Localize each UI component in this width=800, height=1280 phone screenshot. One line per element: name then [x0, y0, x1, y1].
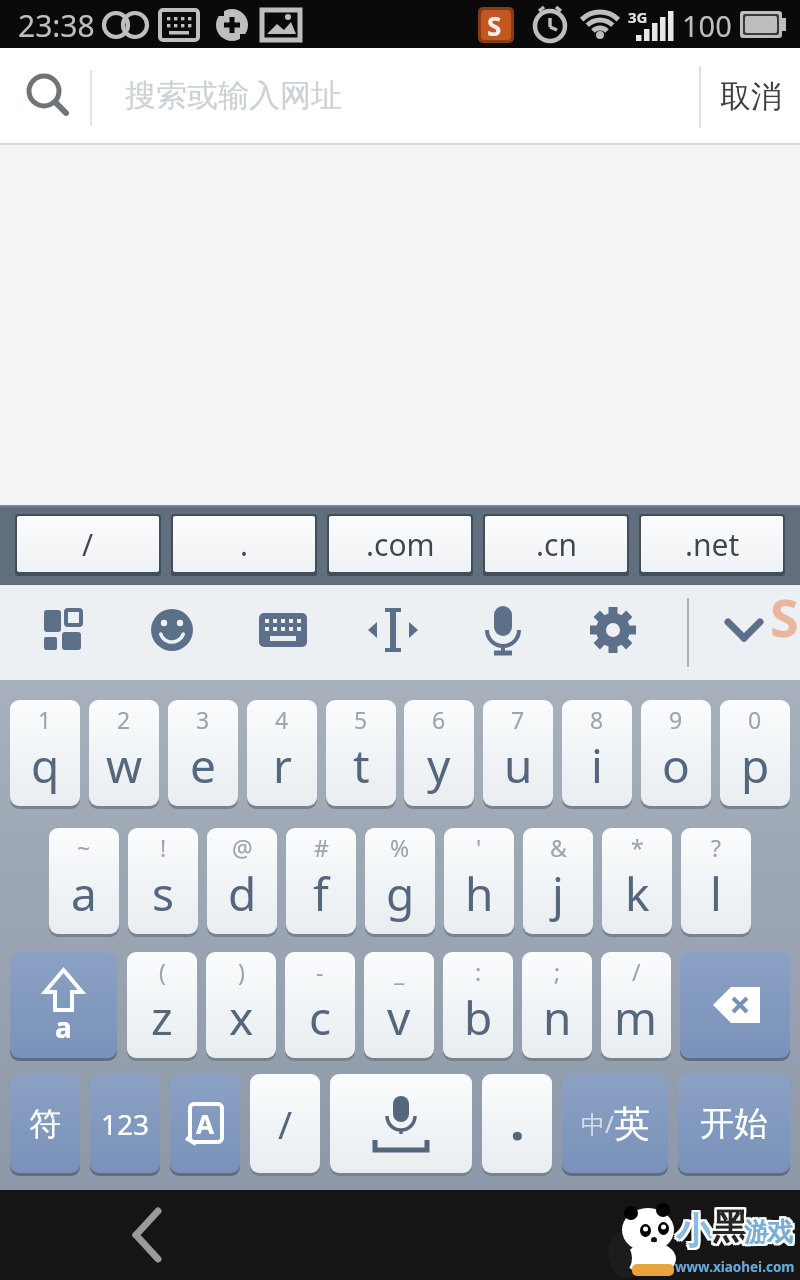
- staticText: .com: [366, 524, 435, 565]
- button[interactable]: :: [443, 952, 513, 1058]
- button[interactable]: /: [250, 1074, 320, 1173]
- staticText: n: [543, 986, 572, 1049]
- staticText: ': [476, 832, 482, 863]
- staticText: 小: [674, 1210, 710, 1255]
- staticText: b: [464, 986, 493, 1049]
- staticText: 小: [678, 1206, 714, 1251]
- button[interactable]: 开始: [678, 1074, 790, 1173]
- staticText: a: [71, 862, 97, 925]
- button[interactable]: .com: [329, 516, 471, 572]
- staticText: f: [313, 862, 329, 925]
- staticText: 游: [746, 1214, 772, 1247]
- staticText: 小: [676, 1208, 712, 1253]
- button[interactable]: [680, 952, 790, 1058]
- staticText: g: [386, 862, 415, 925]
- staticText: 黑: [714, 1206, 750, 1251]
- button[interactable]: ~: [49, 828, 119, 934]
- button[interactable]: A: [170, 1074, 240, 1173]
- button[interactable]: a: [10, 952, 117, 1058]
- staticText: q: [31, 734, 60, 797]
- button[interactable]: 8: [562, 700, 632, 806]
- button[interactable]: 123: [90, 1074, 160, 1173]
- staticText: 符: [29, 1104, 61, 1144]
- button[interactable]: /: [17, 516, 159, 572]
- button[interactable]: [230, 585, 344, 680]
- staticText: h: [465, 862, 494, 925]
- button[interactable]: [572, 585, 686, 680]
- button[interactable]: 5: [326, 700, 396, 806]
- staticText: 游: [746, 1218, 772, 1251]
- button[interactable]: .: [482, 1074, 552, 1173]
- staticText: &: [550, 832, 567, 863]
- button[interactable]: 中/: [562, 1074, 668, 1173]
- button[interactable]: 取消: [701, 48, 800, 145]
- staticText: v: [387, 986, 411, 1049]
- button[interactable]: !: [128, 828, 198, 934]
- staticText: 0: [748, 704, 762, 735]
- button[interactable]: 6: [404, 700, 474, 806]
- staticText: 黑: [714, 1202, 750, 1247]
- button[interactable]: .: [173, 516, 315, 572]
- staticText: 英: [614, 1101, 650, 1146]
- staticText: 游: [744, 1214, 770, 1247]
- button[interactable]: 符: [10, 1074, 80, 1173]
- button[interactable]: 3: [168, 700, 238, 806]
- button[interactable]: &: [523, 828, 593, 934]
- button[interactable]: #: [286, 828, 356, 934]
- staticText: a: [55, 1008, 72, 1046]
- staticText: A: [196, 1106, 214, 1141]
- staticText: /: [632, 956, 641, 987]
- staticText: #: [314, 832, 329, 863]
- button[interactable]: 0: [720, 700, 790, 806]
- button[interactable]: (: [127, 952, 197, 1058]
- button[interactable]: 9: [641, 700, 711, 806]
- staticText: 取消: [720, 77, 782, 116]
- button[interactable]: ;: [522, 952, 592, 1058]
- staticText: s: [152, 862, 175, 925]
- button[interactable]: ?: [681, 828, 751, 934]
- staticText: .: [510, 1084, 525, 1155]
- staticText: 游: [746, 1216, 772, 1249]
- button[interactable]: [0, 585, 115, 680]
- button[interactable]: [115, 585, 230, 680]
- button[interactable]: *: [602, 828, 672, 934]
- button[interactable]: -: [285, 952, 355, 1058]
- staticText: 搜索或输入网址: [125, 76, 342, 115]
- staticText: 3: [196, 704, 210, 735]
- staticText: (: [159, 956, 166, 987]
- staticText: S: [770, 581, 799, 652]
- button[interactable]: [100, 1190, 200, 1280]
- button[interactable]: ': [444, 828, 514, 934]
- button[interactable]: ): [206, 952, 276, 1058]
- staticText: 戏: [769, 1216, 795, 1249]
- staticText: 黑: [712, 1202, 748, 1247]
- button[interactable]: [458, 585, 572, 680]
- button[interactable]: [686, 585, 800, 680]
- button[interactable]: [344, 585, 458, 680]
- staticText: ;: [554, 956, 561, 987]
- button[interactable]: .net: [641, 516, 783, 572]
- button[interactable]: 1: [10, 700, 80, 806]
- staticText: 小: [678, 1210, 714, 1255]
- staticText: 戏: [769, 1214, 795, 1247]
- button[interactable]: %: [365, 828, 435, 934]
- staticText: *: [631, 832, 644, 863]
- button[interactable]: @: [207, 828, 277, 934]
- staticText: 小: [678, 1208, 714, 1253]
- staticText: 游: [744, 1216, 770, 1249]
- button[interactable]: 搜索或输入网址: [92, 48, 700, 145]
- staticText: .cn: [536, 524, 577, 565]
- staticText: 黑: [714, 1204, 750, 1249]
- button[interactable]: 4: [247, 700, 317, 806]
- button[interactable]: 7: [483, 700, 553, 806]
- button[interactable]: [330, 1074, 472, 1173]
- button[interactable]: .cn: [485, 516, 627, 572]
- staticText: 黑: [712, 1206, 748, 1251]
- button[interactable]: 2: [89, 700, 159, 806]
- staticText: 23:38: [18, 5, 95, 46]
- staticText: 戏: [765, 1216, 791, 1249]
- button[interactable]: _: [364, 952, 434, 1058]
- staticText: /: [82, 524, 94, 565]
- staticText: .: [240, 524, 249, 565]
- button[interactable]: /: [601, 952, 671, 1058]
